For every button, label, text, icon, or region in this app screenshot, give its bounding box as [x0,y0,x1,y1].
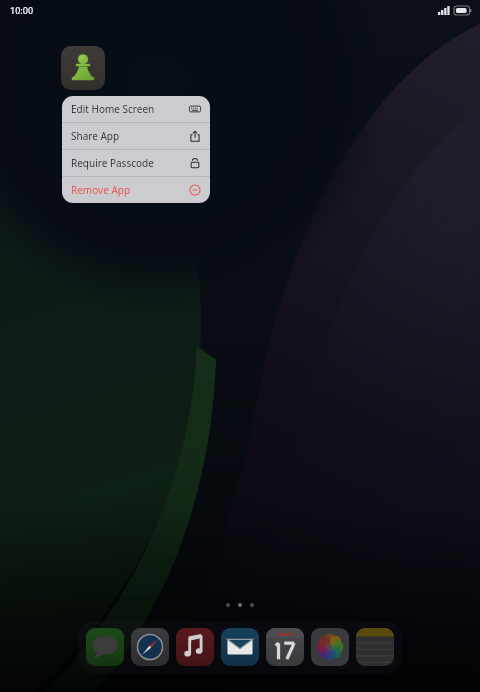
button[interactable]: Notes [356,628,394,666]
button[interactable]: Share App [62,123,210,149]
button[interactable]: Safari [131,628,169,666]
button[interactable]: Mail [221,628,259,666]
staticText: Require Passcode [71,156,154,170]
button[interactable]: Photos [311,628,349,666]
button[interactable]: Messages [86,628,124,666]
button[interactable]: Music [176,628,214,666]
button[interactable]: Chess app [61,46,105,90]
button[interactable]: Require Passcode [62,150,210,176]
staticText: Share App [71,129,120,143]
staticText: Edit Home Screen [71,102,155,116]
button[interactable]: Remove App [62,177,210,203]
staticText: Remove App [71,183,131,197]
staticText: 10:00 [10,4,34,16]
button[interactable]: Edit Home Screen [62,96,210,122]
button[interactable]: Calendar [266,628,304,666]
